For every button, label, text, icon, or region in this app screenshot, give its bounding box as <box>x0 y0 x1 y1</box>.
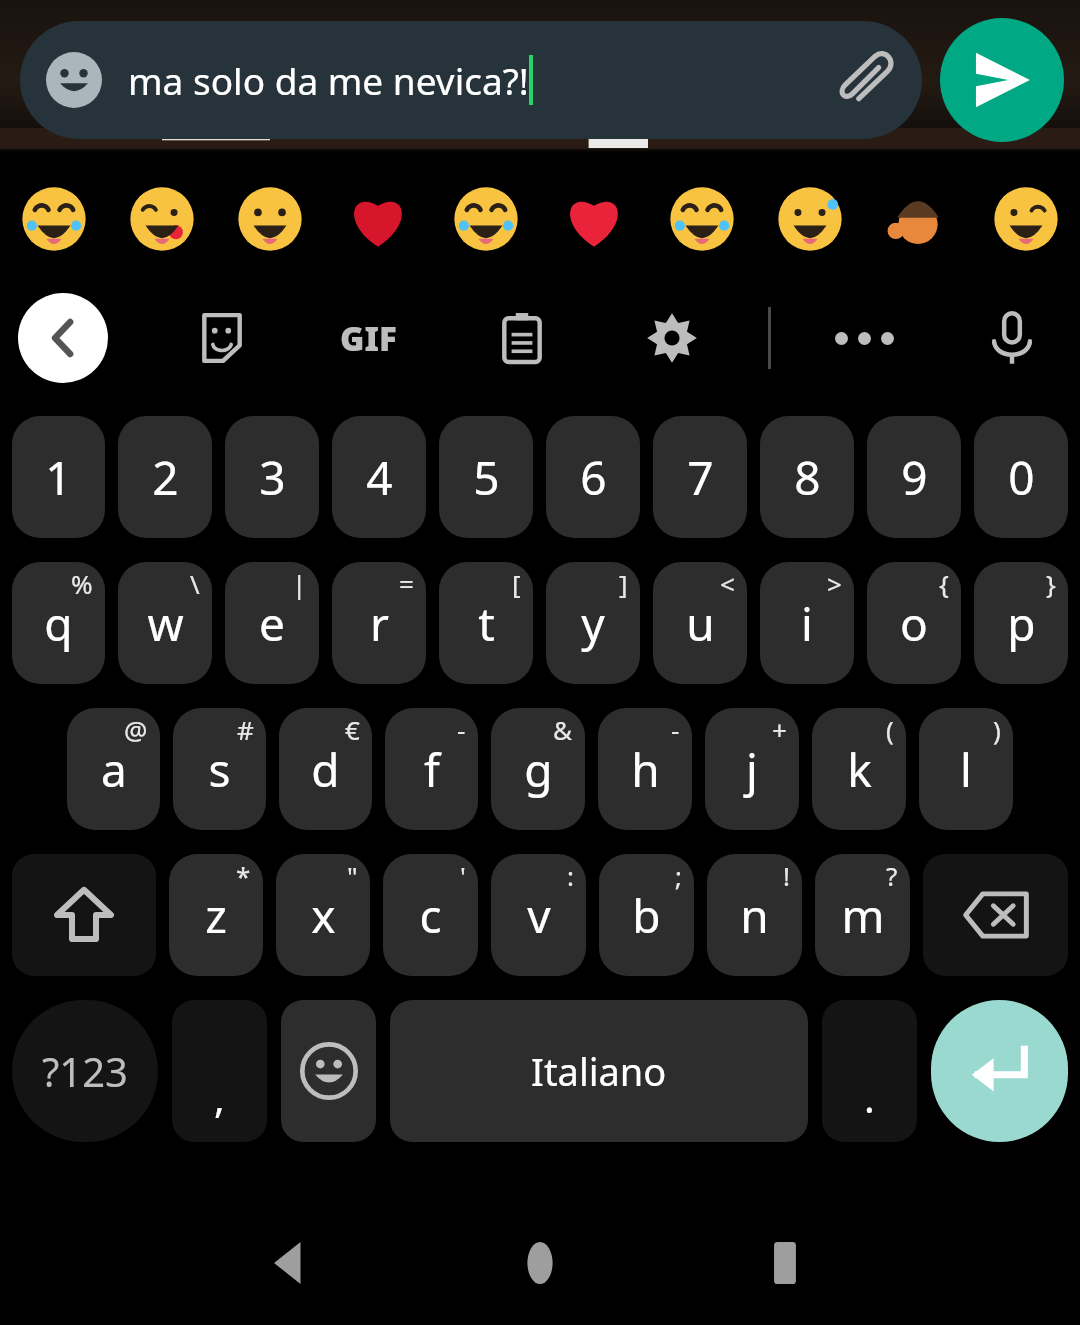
staticText: # <box>237 712 254 747</box>
staticText: c <box>419 884 442 947</box>
button[interactable]: Emoji LAUGH_CRY <box>0 160 108 278</box>
button[interactable]: Back <box>245 1218 335 1308</box>
staticText: r <box>370 592 389 655</box>
button[interactable]: Back <box>18 293 108 383</box>
staticText: ) <box>993 712 1001 747</box>
button[interactable]: Settings <box>628 294 716 382</box>
button[interactable]: - <box>598 708 692 830</box>
button[interactable]: Emoji KISS <box>108 160 216 278</box>
staticText: Italiano <box>531 1045 667 1097</box>
button[interactable]: Emoji WINK <box>972 160 1080 278</box>
button[interactable]: Emoji ROFL <box>648 160 756 278</box>
staticText: , <box>214 1070 225 1124</box>
staticText: . <box>864 1070 875 1124</box>
staticText: p <box>1007 592 1036 655</box>
button[interactable]: " <box>276 854 370 976</box>
button[interactable]: @ <box>67 708 160 830</box>
staticText: 3 <box>259 446 286 509</box>
button[interactable]: ) <box>919 708 1013 830</box>
button[interactable]: 7 <box>653 416 747 538</box>
button[interactable]: ! <box>707 854 802 976</box>
button[interactable]: & <box>491 708 585 830</box>
button[interactable]: 4 <box>332 416 426 538</box>
button[interactable]: ( <box>812 708 906 830</box>
button[interactable]: 5 <box>439 416 533 538</box>
staticText: u <box>686 592 715 655</box>
staticText: ' <box>460 858 466 893</box>
button[interactable]: > <box>760 562 854 684</box>
button[interactable]: { <box>867 562 961 684</box>
button[interactable]: Emoji GRIN <box>216 160 324 278</box>
button[interactable]: 3 <box>225 416 319 538</box>
button[interactable]: Voice input <box>968 294 1056 382</box>
staticText: z <box>205 884 227 947</box>
staticText: - <box>457 712 466 747</box>
button[interactable]: Emoji keyboard <box>281 1000 376 1142</box>
button[interactable]: + <box>705 708 799 830</box>
staticText: 8 <box>794 446 821 509</box>
button[interactable]: 1 <box>12 416 105 538</box>
button[interactable]: 0 <box>974 416 1068 538</box>
button[interactable]: Emoji HEART <box>540 160 648 278</box>
button[interactable]: Shift <box>12 854 156 976</box>
staticText: o <box>900 592 928 655</box>
button[interactable]: Emoji <box>20 21 922 139</box>
button[interactable]: ] <box>546 562 640 684</box>
button[interactable]: . <box>822 1000 917 1142</box>
button[interactable]: Stickers <box>178 294 266 382</box>
button[interactable]: \ <box>118 562 212 684</box>
button[interactable]: - <box>385 708 478 830</box>
button[interactable]: [ <box>439 562 533 684</box>
button[interactable]: 6 <box>546 416 640 538</box>
button[interactable]: Emoji <box>46 52 102 108</box>
button[interactable]: Send <box>940 18 1064 142</box>
button[interactable]: ; <box>599 854 694 976</box>
staticText: t <box>478 592 495 655</box>
staticText: k <box>847 738 872 801</box>
button[interactable]: } <box>974 562 1068 684</box>
button[interactable]: Emoji SWEAT <box>756 160 864 278</box>
button[interactable]: < <box>653 562 747 684</box>
staticText: w <box>147 592 184 655</box>
button[interactable]: ?123 <box>12 1000 158 1142</box>
staticText: 6 <box>580 446 607 509</box>
button[interactable]: , <box>172 1000 267 1142</box>
staticText: % <box>71 566 93 601</box>
button[interactable]: Backspace <box>923 854 1068 976</box>
button[interactable]: 9 <box>867 416 961 538</box>
button[interactable]: € <box>279 708 372 830</box>
button[interactable]: : <box>491 854 586 976</box>
button[interactable]: GIF <box>324 294 412 382</box>
staticText: b <box>632 884 661 947</box>
staticText: = <box>399 566 414 601</box>
button[interactable]: Emoji PERSON <box>864 160 972 278</box>
button[interactable]: Clipboard <box>478 294 566 382</box>
button[interactable]: | <box>225 562 319 684</box>
button[interactable]: Attach <box>834 49 896 111</box>
staticText: n <box>740 884 769 947</box>
button[interactable]: 8 <box>760 416 854 538</box>
button[interactable]: Italiano <box>390 1000 808 1142</box>
button[interactable]: Recents <box>740 1218 830 1308</box>
button[interactable]: ' <box>383 854 478 976</box>
staticText: x <box>311 884 336 947</box>
button[interactable]: ? <box>815 854 910 976</box>
staticText: < <box>720 566 735 601</box>
staticText: 2 <box>152 446 179 509</box>
button[interactable]: Enter <box>931 1000 1068 1142</box>
button[interactable]: Emoji SOB <box>432 160 540 278</box>
button[interactable]: More <box>820 294 908 382</box>
button[interactable]: # <box>173 708 266 830</box>
button[interactable]: % <box>12 562 105 684</box>
staticText: 7 <box>687 446 714 509</box>
button[interactable]: Home <box>495 1218 585 1308</box>
button[interactable]: * <box>169 854 263 976</box>
button[interactable]: 2 <box>118 416 212 538</box>
staticText: @ <box>124 712 148 747</box>
staticText: 1 <box>45 446 72 509</box>
staticText: m <box>841 884 885 947</box>
button[interactable]: = <box>332 562 426 684</box>
staticText: { <box>939 566 949 601</box>
staticText: v <box>527 884 551 947</box>
button[interactable]: Emoji HEART_DARK <box>324 160 432 278</box>
